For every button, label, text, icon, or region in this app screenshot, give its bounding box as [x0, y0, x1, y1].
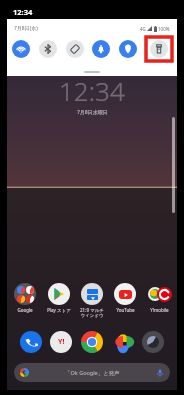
button[interactable]: 21:9 マルチ ウィンドウ — [76, 283, 108, 318]
button[interactable]: Auto rotate — [66, 40, 84, 58]
button[interactable]: Notifications — [92, 40, 110, 58]
button[interactable]: Google Photos — [111, 330, 135, 354]
staticText: Google — [17, 307, 33, 313]
button[interactable]: Google — [9, 283, 41, 313]
button[interactable]: Bluetooth — [39, 40, 57, 58]
button[interactable]: Yahoo Japan — [49, 330, 73, 354]
button[interactable]: Location — [119, 40, 137, 58]
staticText: Y! — [58, 337, 65, 347]
button[interactable]: Camera — [141, 330, 165, 354]
button[interactable]: Phone — [19, 330, 43, 354]
staticText: 「Ok Google」と発声 — [65, 369, 120, 377]
staticText: 7月8日水曜日 — [77, 109, 108, 116]
staticText: 100% — [158, 26, 170, 32]
button[interactable]: YouTube — [109, 283, 141, 313]
staticText: Y!mobile — [150, 307, 169, 313]
button[interactable]: Flashlight — [150, 40, 168, 58]
staticText: 4G — [140, 26, 146, 32]
staticText: 7月8日(水) — [14, 25, 38, 32]
button[interactable]: Wi-Fi — [12, 40, 30, 58]
staticText: Play ストア — [47, 307, 71, 313]
button[interactable]: Y!mobile — [143, 283, 175, 313]
staticText: YouTube — [116, 307, 135, 313]
button[interactable]: Chrome — [80, 330, 104, 354]
button[interactable]: Play ストア — [43, 283, 75, 313]
staticText: 12:34 — [13, 7, 33, 17]
staticText: 21:9 マルチ ウィンドウ — [80, 307, 104, 318]
button[interactable]: 「Ok Google」と発声 — [14, 363, 170, 382]
staticText: 12:34 — [59, 73, 125, 108]
